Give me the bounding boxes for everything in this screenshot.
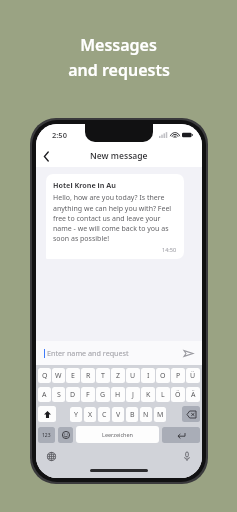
button[interactable]: E (66, 368, 80, 383)
staticText: C (102, 410, 107, 420)
staticText: Messages (80, 34, 157, 56)
staticText: Ö (175, 390, 181, 400)
button[interactable]: I (141, 368, 155, 383)
button[interactable]: Send (182, 347, 194, 359)
button[interactable]: L (156, 387, 170, 402)
button[interactable]: N (140, 407, 152, 422)
button[interactable]: O (156, 368, 170, 383)
staticText: 14:50 (162, 246, 177, 253)
staticText: P (176, 371, 181, 381)
staticText: 123 (42, 432, 51, 439)
button[interactable]: U (126, 368, 140, 383)
staticText: Z (116, 371, 121, 381)
button[interactable]: M (154, 407, 166, 422)
button[interactable]: V (112, 407, 124, 422)
button[interactable]: Key (182, 406, 200, 422)
staticText: and requests (68, 59, 170, 81)
button[interactable]: Change keyboard (45, 450, 58, 463)
staticText: M (157, 410, 164, 420)
button[interactable]: K (141, 387, 155, 402)
button[interactable]: D (66, 387, 80, 402)
staticText: Ü (190, 371, 196, 381)
staticText: Hotel Krone in Au (53, 180, 116, 190)
button[interactable]: J (126, 387, 140, 402)
button[interactable]: B (126, 407, 138, 422)
staticText: N (143, 410, 149, 420)
button[interactable]: Q (38, 368, 51, 383)
staticText: T (101, 371, 105, 381)
button[interactable]: Z (111, 368, 125, 383)
button[interactable]: Key (162, 427, 200, 443)
staticText: G (100, 390, 106, 400)
staticText: K (146, 390, 151, 400)
staticText: D (70, 390, 76, 400)
button[interactable]: R (81, 368, 95, 383)
button[interactable]: Key (58, 427, 73, 443)
button[interactable]: Hotel Krone in Au (46, 174, 184, 259)
button[interactable]: Ö (171, 387, 185, 402)
button[interactable]: Ü (186, 368, 200, 383)
staticText: E (71, 371, 75, 381)
staticText: Enter name and request (47, 348, 129, 358)
staticText: I (147, 371, 150, 381)
staticText: B (130, 410, 135, 420)
button[interactable]: G (96, 387, 110, 402)
staticText: U (130, 371, 136, 381)
staticText: X (88, 410, 93, 420)
staticText: V (116, 410, 121, 420)
button[interactable]: Back (36, 146, 56, 166)
staticText: F (86, 390, 90, 400)
button[interactable]: X (84, 407, 96, 422)
staticText: Q (42, 371, 48, 381)
staticText: S (57, 390, 61, 400)
staticText: R (86, 371, 91, 381)
button[interactable]: A (38, 387, 51, 402)
button[interactable]: C (98, 407, 110, 422)
button[interactable]: W (52, 368, 65, 383)
staticText: O (160, 371, 166, 381)
button[interactable]: P (171, 368, 185, 383)
button[interactable]: Enter name and request (36, 341, 202, 365)
staticText: 2:50 (52, 130, 67, 140)
staticText: J (132, 390, 134, 400)
button[interactable]: Leerzeichen (76, 426, 159, 443)
button[interactable]: Y (70, 407, 82, 422)
staticText: Ä (191, 390, 196, 400)
button[interactable]: S (52, 387, 65, 402)
button[interactable]: H (111, 387, 125, 402)
staticText: H (115, 390, 121, 400)
button[interactable]: T (96, 368, 110, 383)
staticText: A (42, 390, 47, 400)
button[interactable]: Key (38, 427, 55, 443)
staticText: L (161, 390, 165, 400)
button[interactable]: Dictate (180, 450, 193, 463)
staticText: Leerzeichen (102, 431, 134, 438)
button[interactable]: Ä (186, 387, 200, 402)
button[interactable]: F (81, 387, 95, 402)
staticText: W (55, 371, 62, 381)
staticText: Y (74, 410, 78, 420)
staticText: Hello, how are you today? Is there anyth… (53, 193, 177, 243)
button[interactable]: Key (38, 406, 56, 422)
staticText: New message (90, 150, 148, 162)
